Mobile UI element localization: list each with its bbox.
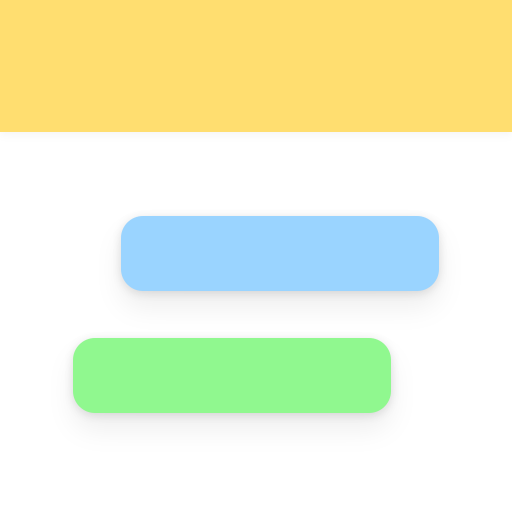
button[interactable]: Blue option <box>121 216 439 291</box>
button[interactable]: Green option <box>73 338 391 413</box>
